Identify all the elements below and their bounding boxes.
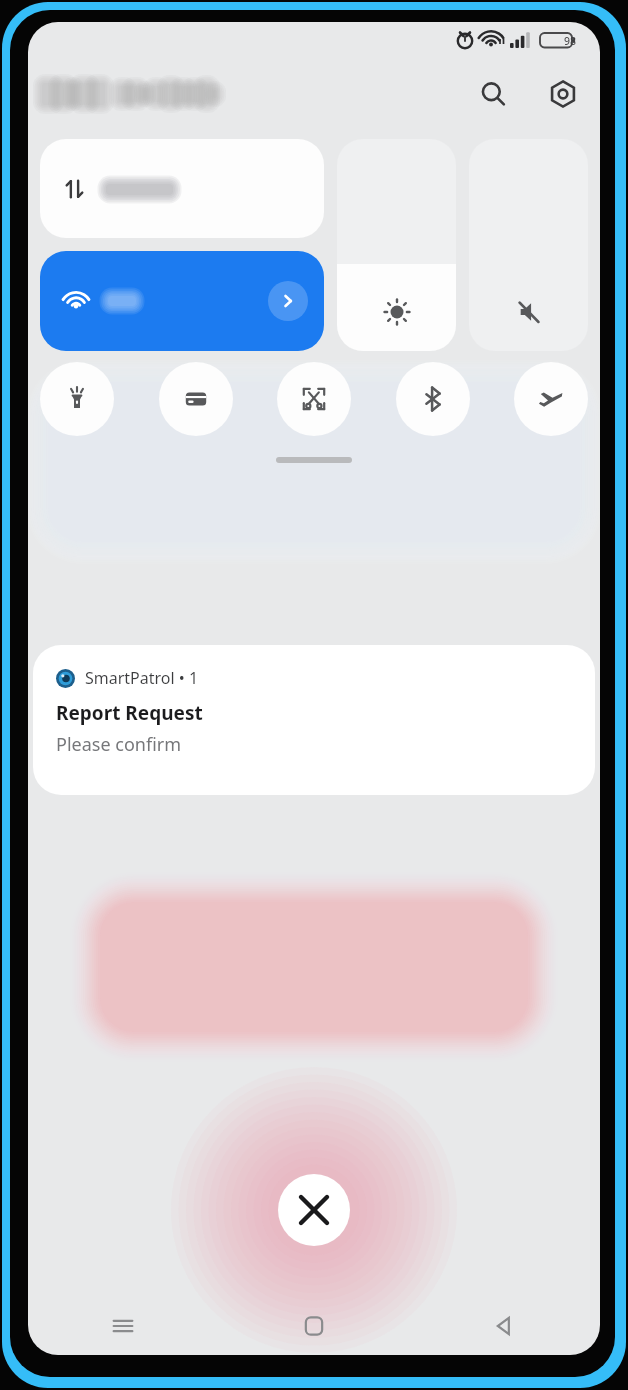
button[interactable]: Wallet (159, 362, 233, 436)
button[interactable]: Settings (540, 71, 586, 117)
button[interactable]: Volume muted (469, 139, 588, 351)
button[interactable]: Clear all notifications (278, 1174, 350, 1246)
button[interactable]: Airplane mode (514, 362, 588, 436)
button[interactable]: Expand quick settings (276, 457, 352, 463)
staticText: Report Request (56, 700, 203, 726)
button[interactable]: Search (470, 71, 516, 117)
staticText: SmartPatrol • 1 (85, 667, 199, 689)
button[interactable]: Wi-Fi settings (268, 281, 308, 321)
button[interactable]: Screenshot (277, 362, 351, 436)
button[interactable]: Back (409, 1297, 600, 1355)
button[interactable]: Wi-Fi settings (40, 251, 324, 351)
button[interactable]: Flashlight (40, 362, 114, 436)
button[interactable]: SmartPatrol • 1 (33, 645, 595, 795)
button[interactable] (40, 139, 324, 238)
staticText: Please confirm (56, 732, 181, 757)
button[interactable]: Home (218, 1297, 409, 1355)
button[interactable]: Brightness (337, 139, 456, 351)
button[interactable]: Bluetooth (396, 362, 470, 436)
button[interactable]: Recent apps (28, 1297, 218, 1355)
staticText: 98 (564, 34, 577, 48)
